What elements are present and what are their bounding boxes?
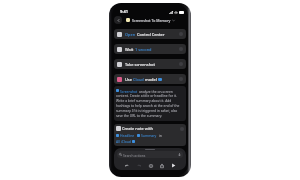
button[interactable]: Wait — [114, 44, 186, 54]
button[interactable]: Create note with — [114, 124, 186, 146]
button[interactable]: Search actions — [117, 151, 183, 158]
staticText: Screenshot To Memory — [132, 18, 171, 23]
staticText: Take screenshot — [125, 62, 155, 67]
staticText: Summary — [141, 133, 157, 138]
staticText: Use — [125, 77, 132, 82]
staticText: analyze the on-screen — [139, 89, 173, 93]
button[interactable]: Screenshot — [114, 86, 186, 121]
staticText: All iCloud — [116, 139, 131, 144]
button[interactable]: Undo — [123, 162, 130, 169]
staticText: 1 second — [135, 47, 152, 52]
button[interactable]: Use — [114, 74, 186, 84]
staticText: model — [145, 77, 157, 82]
staticText: Cloud — [133, 77, 144, 82]
staticText: Wait — [125, 47, 134, 52]
staticText: Headline — [120, 133, 135, 138]
button[interactable]: Duplicate — [147, 162, 154, 169]
button[interactable]: Run — [170, 162, 177, 169]
staticText: Screenshot — [120, 89, 138, 93]
button[interactable]: Open — [114, 29, 186, 39]
button[interactable]: Share — [158, 162, 165, 169]
staticText: in — [159, 133, 162, 138]
staticText: content. Create a title or headline for … — [116, 93, 184, 118]
staticText: Open — [125, 32, 136, 37]
staticText: Create note with — [122, 126, 153, 131]
button[interactable]: Take screenshot — [114, 59, 186, 69]
staticText: Search actions — [123, 153, 146, 157]
button[interactable]: Redo — [135, 162, 142, 169]
staticText: 9:41 — [120, 9, 128, 14]
staticText: Control Center — [137, 32, 165, 37]
button[interactable]: Back — [114, 16, 122, 24]
